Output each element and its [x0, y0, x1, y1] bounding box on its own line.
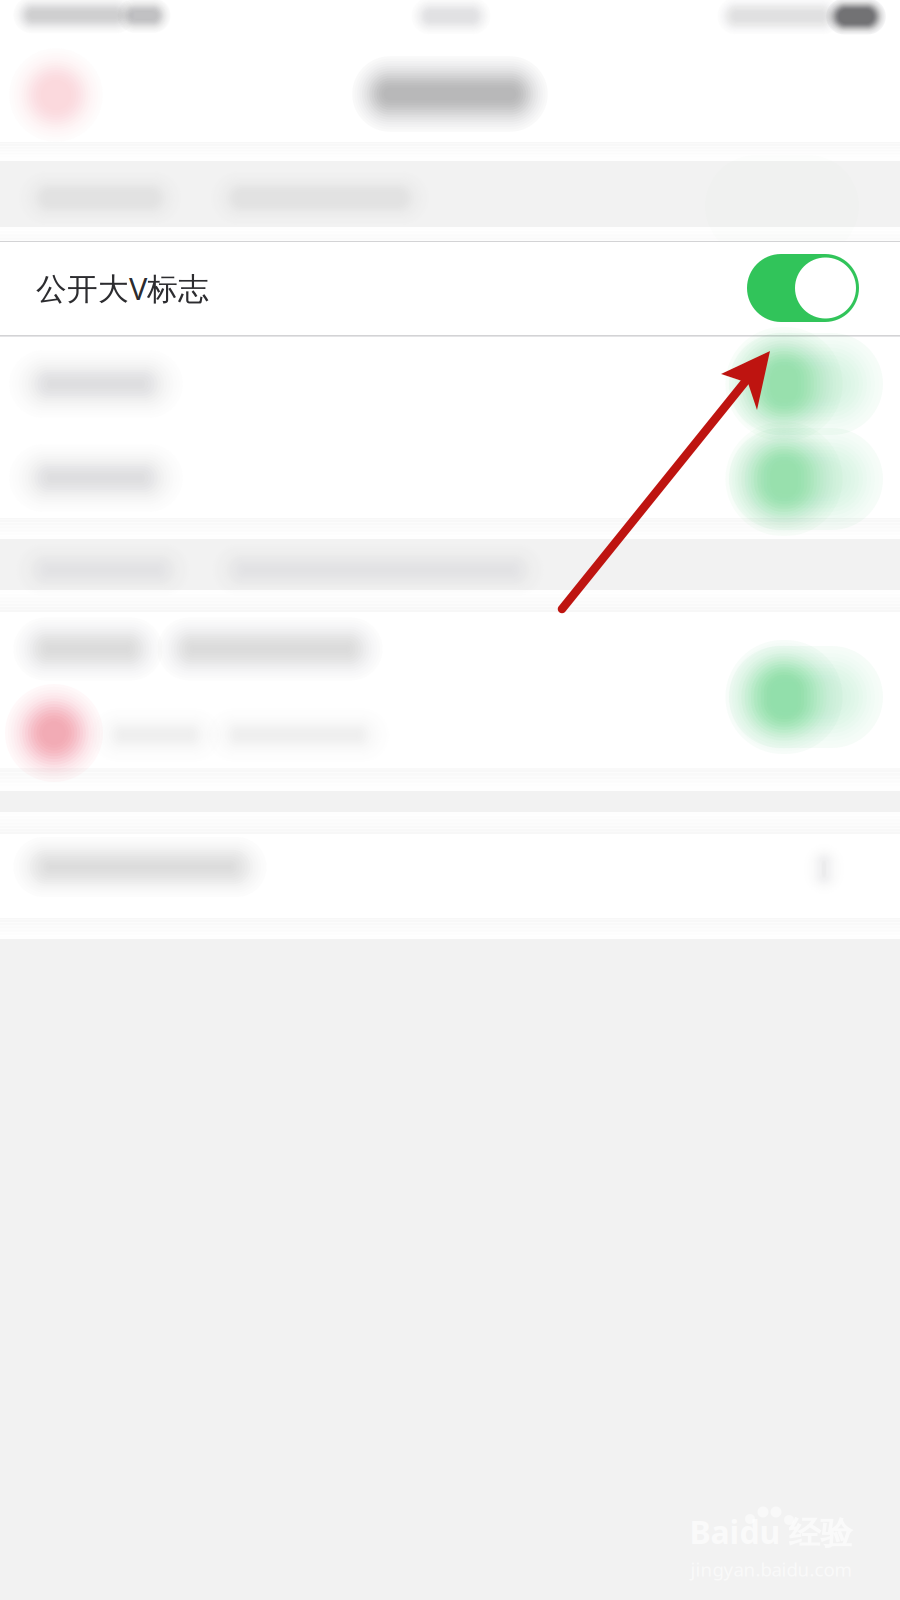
staticText: Baidu 经验: [689, 1510, 852, 1553]
button[interactable]: 公开大V标志: [0, 242, 900, 334]
staticText: 公开大V标志: [36, 268, 209, 308]
